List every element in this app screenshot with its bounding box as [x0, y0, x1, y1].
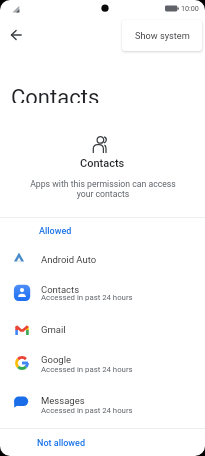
staticText: Contacts: [11, 85, 100, 103]
button[interactable]: [6, 25, 26, 45]
staticText: Messages: [41, 395, 85, 406]
button[interactable]: Show system: [122, 20, 202, 51]
staticText: Contacts: [80, 157, 125, 170]
staticText: 10:00: [181, 4, 199, 12]
staticText: Not allowed: [37, 438, 85, 449]
button[interactable]: [0, 243, 205, 276]
staticText: Allowed: [39, 226, 72, 237]
staticText: Show system: [135, 30, 190, 41]
button[interactable]: Not allowed: [0, 0, 48, 18]
button[interactable]: [0, 386, 205, 424]
staticText: Gmail: [41, 324, 66, 335]
staticText: Accessed in past 24 hours: [41, 365, 133, 374]
staticText: Accessed in past 24 hours: [41, 406, 133, 415]
button[interactable]: [0, 346, 205, 384]
staticText: Google: [41, 354, 71, 365]
staticText: Contacts: [41, 284, 80, 295]
staticText: Accessed in past 24 hours: [41, 293, 133, 302]
staticText: Android Auto: [41, 254, 97, 265]
button[interactable]: [0, 276, 205, 313]
button[interactable]: [0, 313, 205, 346]
staticText: Apps with this permission can access you…: [30, 179, 176, 199]
